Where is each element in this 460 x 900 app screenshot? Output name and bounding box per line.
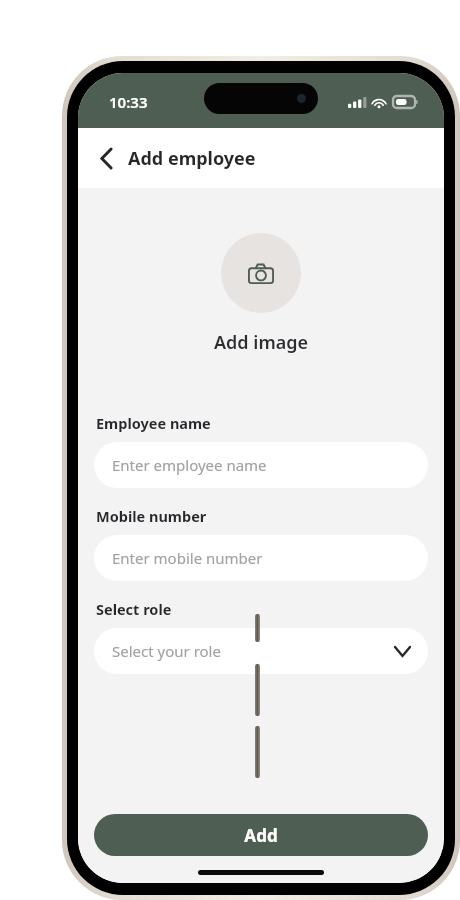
staticText: Employee name: [96, 413, 211, 433]
staticText: Enter mobile number: [112, 548, 410, 568]
staticText: Enter employee name: [112, 455, 410, 475]
staticText: Mobile number: [96, 506, 207, 526]
staticText: Add: [244, 824, 278, 847]
staticText: 10:33: [109, 92, 148, 112]
staticText: Select your role: [112, 641, 395, 661]
button[interactable]: Back: [88, 140, 124, 176]
staticText: Add image: [214, 330, 309, 355]
button[interactable]: Enter mobile number: [94, 535, 428, 581]
staticText: Add employee: [128, 146, 256, 171]
button[interactable]: Select your role: [94, 628, 428, 674]
staticText: Select role: [96, 599, 172, 619]
button[interactable]: Add: [94, 814, 428, 856]
button[interactable]: Enter employee name: [94, 442, 428, 488]
button[interactable]: Add image: [221, 233, 301, 313]
